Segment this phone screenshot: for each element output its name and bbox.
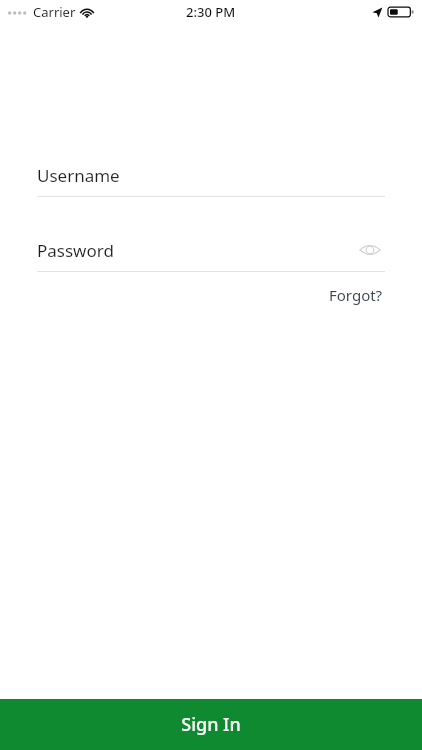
- button[interactable]: Username: [37, 160, 385, 197]
- button[interactable]: Sign In: [0, 699, 422, 750]
- button[interactable]: Show password: [355, 235, 385, 265]
- button[interactable]: Forgot?: [327, 282, 385, 308]
- staticText: Forgot?: [329, 285, 383, 305]
- staticText: 2:30 PM: [186, 3, 236, 21]
- button[interactable]: Password: [37, 235, 385, 272]
- staticText: Sign In: [181, 712, 241, 737]
- staticText: Password: [37, 239, 114, 262]
- staticText: Carrier: [33, 3, 76, 21]
- staticText: Username: [37, 164, 120, 187]
